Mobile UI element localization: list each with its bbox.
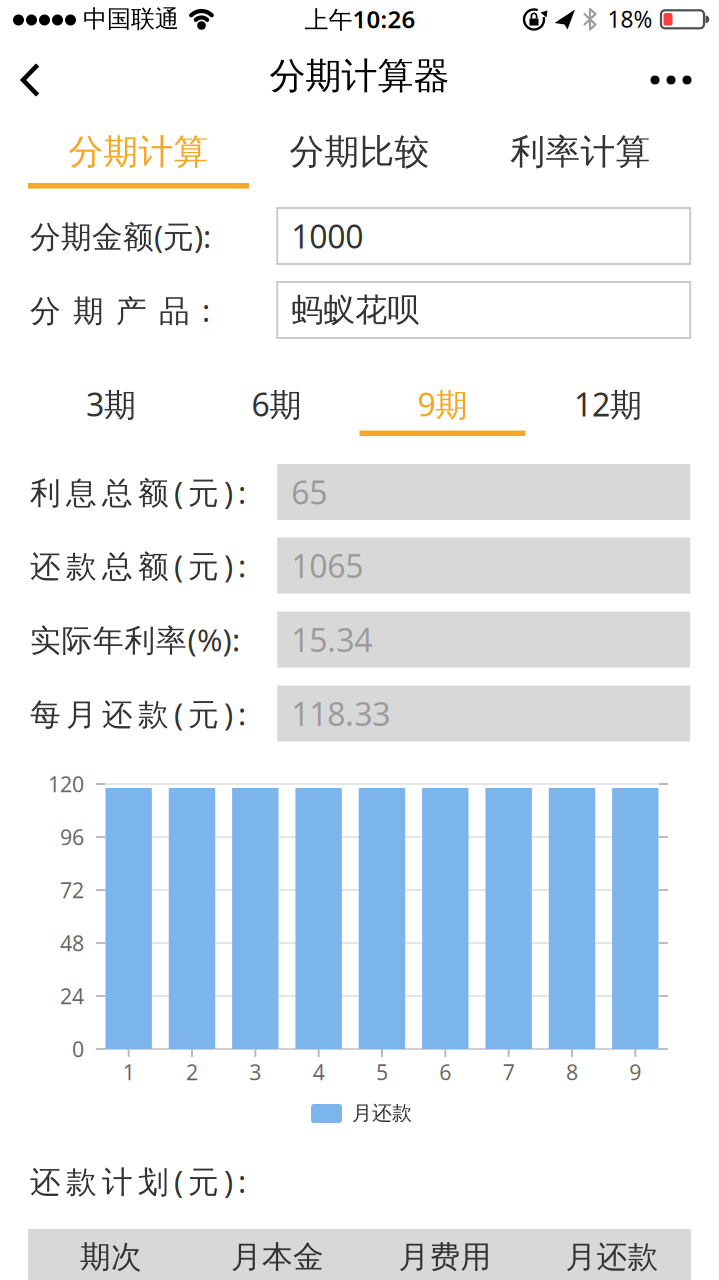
staticText: 6	[439, 1058, 451, 1086]
button[interactable]	[650, 75, 692, 85]
staticText: 9	[629, 1058, 641, 1086]
staticText: 1000	[291, 215, 363, 257]
staticText: 4	[313, 1058, 325, 1086]
staticText: 9期	[417, 383, 467, 425]
staticText: 分期金额(元):	[30, 216, 211, 256]
staticText: 分期计算	[68, 131, 208, 173]
staticText: 实际年利率(%):	[30, 619, 240, 660]
staticText: 15.34	[291, 618, 372, 661]
staticText: 65	[291, 471, 327, 513]
button[interactable]: 6期	[194, 374, 359, 434]
staticText: 118.33	[291, 692, 390, 735]
staticText: 96	[60, 823, 84, 851]
staticText: 24	[60, 982, 84, 1010]
staticText: 7	[503, 1058, 515, 1086]
staticText: 中国联通	[83, 4, 179, 34]
staticText: 0	[72, 1035, 84, 1063]
staticText: 3	[249, 1058, 261, 1086]
button[interactable]	[21, 63, 40, 97]
button[interactable]: 12期	[526, 374, 691, 434]
staticText: 还款总额(元):	[30, 545, 246, 586]
staticText: 72	[60, 876, 84, 904]
staticText: 分期比较	[289, 131, 429, 173]
staticText: 利息总额(元):	[30, 472, 246, 512]
button[interactable]: 1000	[277, 208, 690, 264]
staticText: 分期产品:	[30, 290, 210, 330]
staticText: 3期	[86, 383, 136, 425]
button[interactable]: 利率计算	[470, 121, 691, 183]
staticText: 月本金	[231, 1238, 324, 1276]
staticText: 18%	[607, 4, 652, 34]
staticText: 月费用	[398, 1238, 491, 1276]
staticText: 48	[60, 929, 84, 957]
staticText: 利率计算	[510, 131, 650, 173]
staticText: 还款计划(元):	[30, 1161, 246, 1201]
button[interactable]: 分期计算	[28, 121, 249, 183]
button[interactable]: 蚂蚁花呗	[277, 282, 690, 338]
staticText: 蚂蚁花呗	[291, 290, 419, 330]
button[interactable]: 3期	[28, 374, 193, 434]
staticText: 8	[566, 1058, 578, 1086]
button[interactable]: 分期比较	[249, 121, 470, 183]
staticText: 分期计算器	[269, 54, 449, 98]
staticText: 月还款	[352, 1101, 412, 1125]
staticText: 每月还款(元):	[30, 693, 246, 734]
staticText: 5	[376, 1058, 388, 1086]
staticText: 12期	[574, 383, 642, 425]
staticText: 月还款	[565, 1238, 658, 1276]
staticText: 6期	[252, 383, 302, 425]
staticText: 1065	[291, 544, 363, 587]
staticText: 上午10:26	[304, 3, 415, 35]
staticText: 期次	[80, 1238, 142, 1276]
button[interactable]: 9期	[360, 374, 525, 434]
staticText: 1	[123, 1058, 135, 1086]
staticText: 120	[48, 770, 84, 798]
staticText: 2	[186, 1058, 198, 1086]
